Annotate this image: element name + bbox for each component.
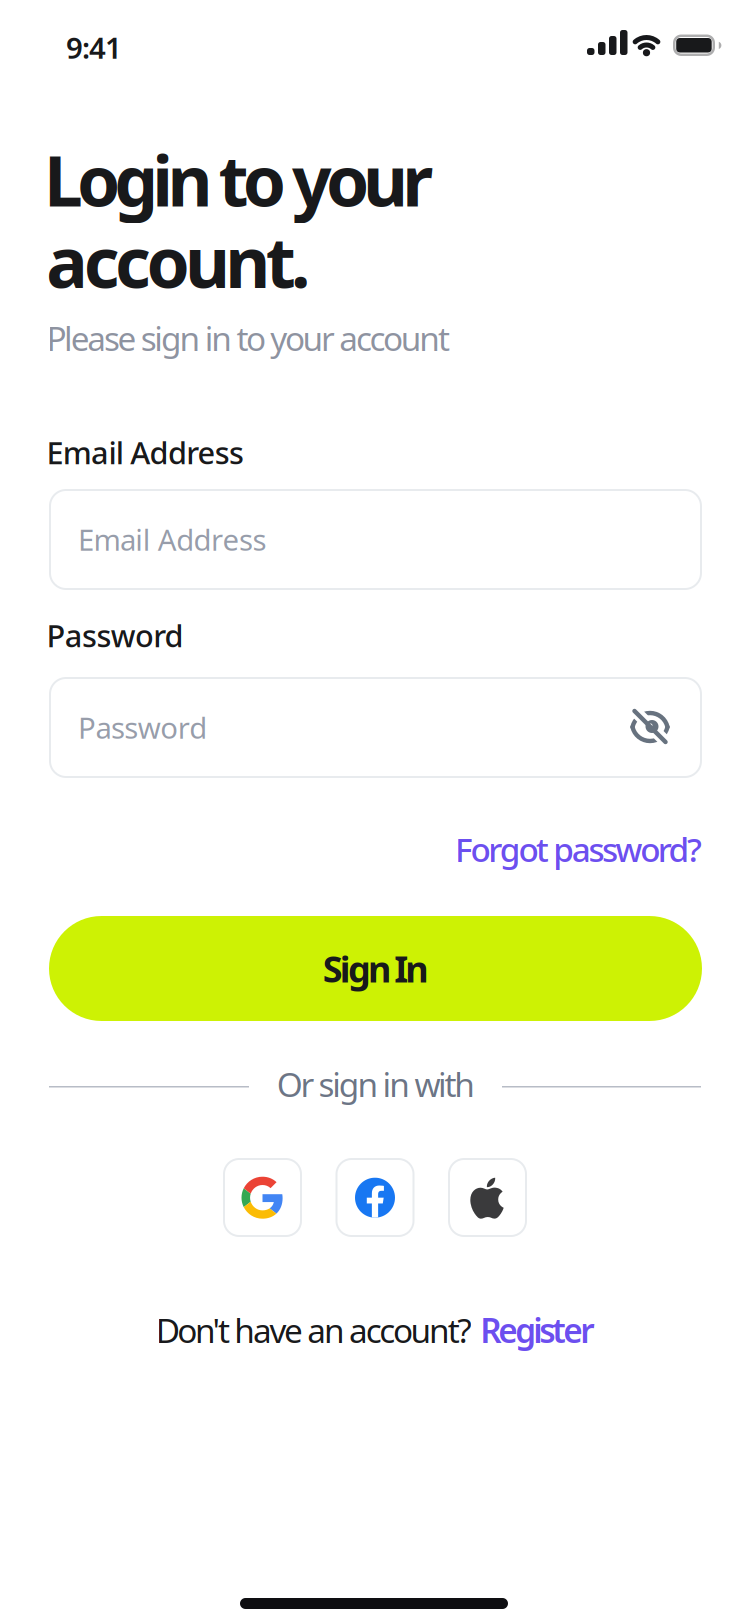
button[interactable]: Register: [480, 1308, 594, 1352]
button[interactable]: Sign in with Google: [223, 1158, 302, 1237]
staticText: Email Address: [78, 520, 266, 559]
staticText: Login to your: [44, 133, 433, 226]
button[interactable]: Password: [49, 677, 702, 778]
staticText: Password: [46, 615, 184, 656]
staticText: Or sign in with: [277, 1062, 475, 1106]
staticText: Password: [78, 708, 207, 747]
staticText: 9:41: [66, 28, 122, 67]
button[interactable]: Forgot password?: [455, 827, 702, 871]
staticText: Sign In: [323, 945, 428, 992]
button[interactable]: Show password: [629, 707, 671, 747]
staticText: Please sign in to your account: [46, 316, 450, 360]
button[interactable]: Email Address: [49, 489, 702, 590]
staticText: Forgot password?: [455, 827, 702, 871]
staticText: Don't have an account?: [156, 1308, 471, 1352]
button[interactable]: Sign in with Facebook: [335, 1158, 414, 1237]
staticText: Email Address: [46, 432, 244, 473]
button[interactable]: Sign In: [49, 916, 702, 1021]
staticText: Register: [480, 1308, 594, 1352]
staticText: account.: [46, 215, 310, 307]
button[interactable]: Sign in with Apple: [448, 1158, 527, 1237]
